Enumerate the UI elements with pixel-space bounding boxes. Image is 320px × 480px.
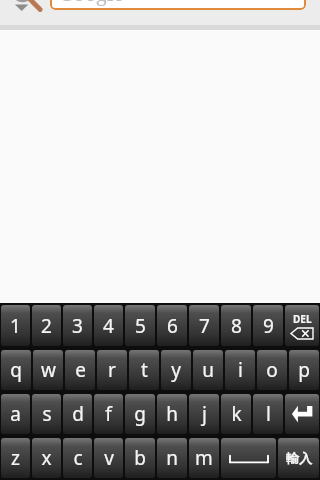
staticText: d <box>72 401 84 427</box>
button[interactable]: 5 <box>125 305 155 346</box>
staticText: k <box>231 401 242 427</box>
button[interactable]: p <box>289 350 319 390</box>
button[interactable]: Enter <box>285 394 319 434</box>
button[interactable]: 3 <box>63 305 92 346</box>
button[interactable]: h <box>157 394 187 434</box>
staticText: Google <box>59 0 125 7</box>
staticText: l <box>266 401 271 427</box>
button[interactable]: z <box>1 438 30 478</box>
staticText: 1 <box>10 313 21 339</box>
button[interactable]: 1 <box>1 305 30 346</box>
staticText: x <box>41 445 52 471</box>
button[interactable]: Space <box>221 438 276 478</box>
staticText: a <box>10 401 21 427</box>
staticText: 2 <box>41 313 52 339</box>
button[interactable]: 8 <box>221 305 251 346</box>
staticText: 5 <box>135 313 146 339</box>
staticText: q <box>10 357 22 383</box>
staticText: b <box>134 445 146 471</box>
staticText: p <box>298 357 310 383</box>
button[interactable]: g <box>125 394 155 434</box>
button[interactable]: 輸入 <box>278 438 319 478</box>
button[interactable]: a <box>1 394 30 434</box>
button[interactable]: d <box>63 394 92 434</box>
staticText: z <box>11 445 20 471</box>
button[interactable]: r <box>97 350 127 390</box>
staticText: i <box>238 357 243 383</box>
button[interactable]: Delete <box>285 305 319 346</box>
button[interactable]: 2 <box>32 305 61 346</box>
button[interactable]: e <box>65 350 95 390</box>
button[interactable]: v <box>94 438 123 478</box>
staticText: v <box>104 445 114 471</box>
staticText: 6 <box>167 313 178 339</box>
staticText: 3 <box>72 313 83 339</box>
button[interactable]: 6 <box>157 305 187 346</box>
button[interactable]: f <box>94 394 123 434</box>
button[interactable]: x <box>32 438 61 478</box>
button[interactable]: Google <box>50 0 306 10</box>
staticText: 4 <box>103 313 114 339</box>
button[interactable]: b <box>125 438 155 478</box>
button[interactable]: k <box>221 394 251 434</box>
staticText: n <box>166 445 178 471</box>
button[interactable]: 7 <box>189 305 219 346</box>
staticText: 輸入 <box>286 450 312 466</box>
staticText: DEL <box>293 312 312 326</box>
staticText: u <box>202 357 214 383</box>
button[interactable]: y <box>161 350 191 390</box>
button[interactable]: l <box>253 394 283 434</box>
staticText: 8 <box>231 313 242 339</box>
staticText: f <box>105 401 112 427</box>
staticText: y <box>171 357 181 383</box>
staticText: r <box>108 357 116 383</box>
staticText: m <box>195 445 213 471</box>
button[interactable]: n <box>157 438 187 478</box>
staticText: o <box>266 357 278 383</box>
button[interactable]: t <box>129 350 159 390</box>
button[interactable]: w <box>33 350 63 390</box>
button[interactable]: s <box>32 394 61 434</box>
button[interactable]: Search provider <box>2 0 48 20</box>
button[interactable]: i <box>225 350 255 390</box>
staticText: t <box>141 357 148 383</box>
button[interactable]: j <box>189 394 219 434</box>
staticText: s <box>42 401 52 427</box>
button[interactable]: o <box>257 350 287 390</box>
staticText: h <box>166 401 178 427</box>
staticText: e <box>75 357 86 383</box>
staticText: 7 <box>199 313 210 339</box>
staticText: g <box>134 401 146 427</box>
button[interactable]: 9 <box>253 305 283 346</box>
staticText: c <box>73 445 83 471</box>
button[interactable]: 4 <box>94 305 123 346</box>
button[interactable]: c <box>63 438 92 478</box>
button[interactable]: u <box>193 350 223 390</box>
staticText: j <box>202 401 207 427</box>
staticText: 9 <box>263 313 274 339</box>
staticText: w <box>41 357 56 383</box>
button[interactable]: m <box>189 438 219 478</box>
button[interactable]: q <box>1 350 31 390</box>
